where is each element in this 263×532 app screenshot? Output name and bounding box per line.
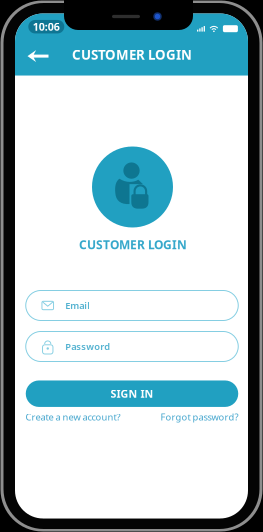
staticText: Email: [65, 299, 90, 312]
staticText: Password: [65, 340, 110, 353]
staticText: SIGN IN: [110, 387, 153, 401]
staticText: CUSTOMER LOGIN: [72, 46, 192, 63]
button[interactable]: Create a new account?: [25, 411, 120, 423]
button[interactable]: Back: [18, 39, 58, 73]
button[interactable]: SIGN IN: [26, 380, 238, 407]
button[interactable]: Email: [26, 290, 238, 320]
button[interactable]: Password: [26, 331, 238, 361]
staticText: CUSTOMER LOGIN: [79, 236, 187, 252]
staticText: Forgot password?: [160, 411, 238, 423]
button[interactable]: Forgot password?: [160, 411, 238, 423]
staticText: Create a new account?: [25, 411, 120, 423]
staticText: 10:06: [33, 20, 60, 34]
